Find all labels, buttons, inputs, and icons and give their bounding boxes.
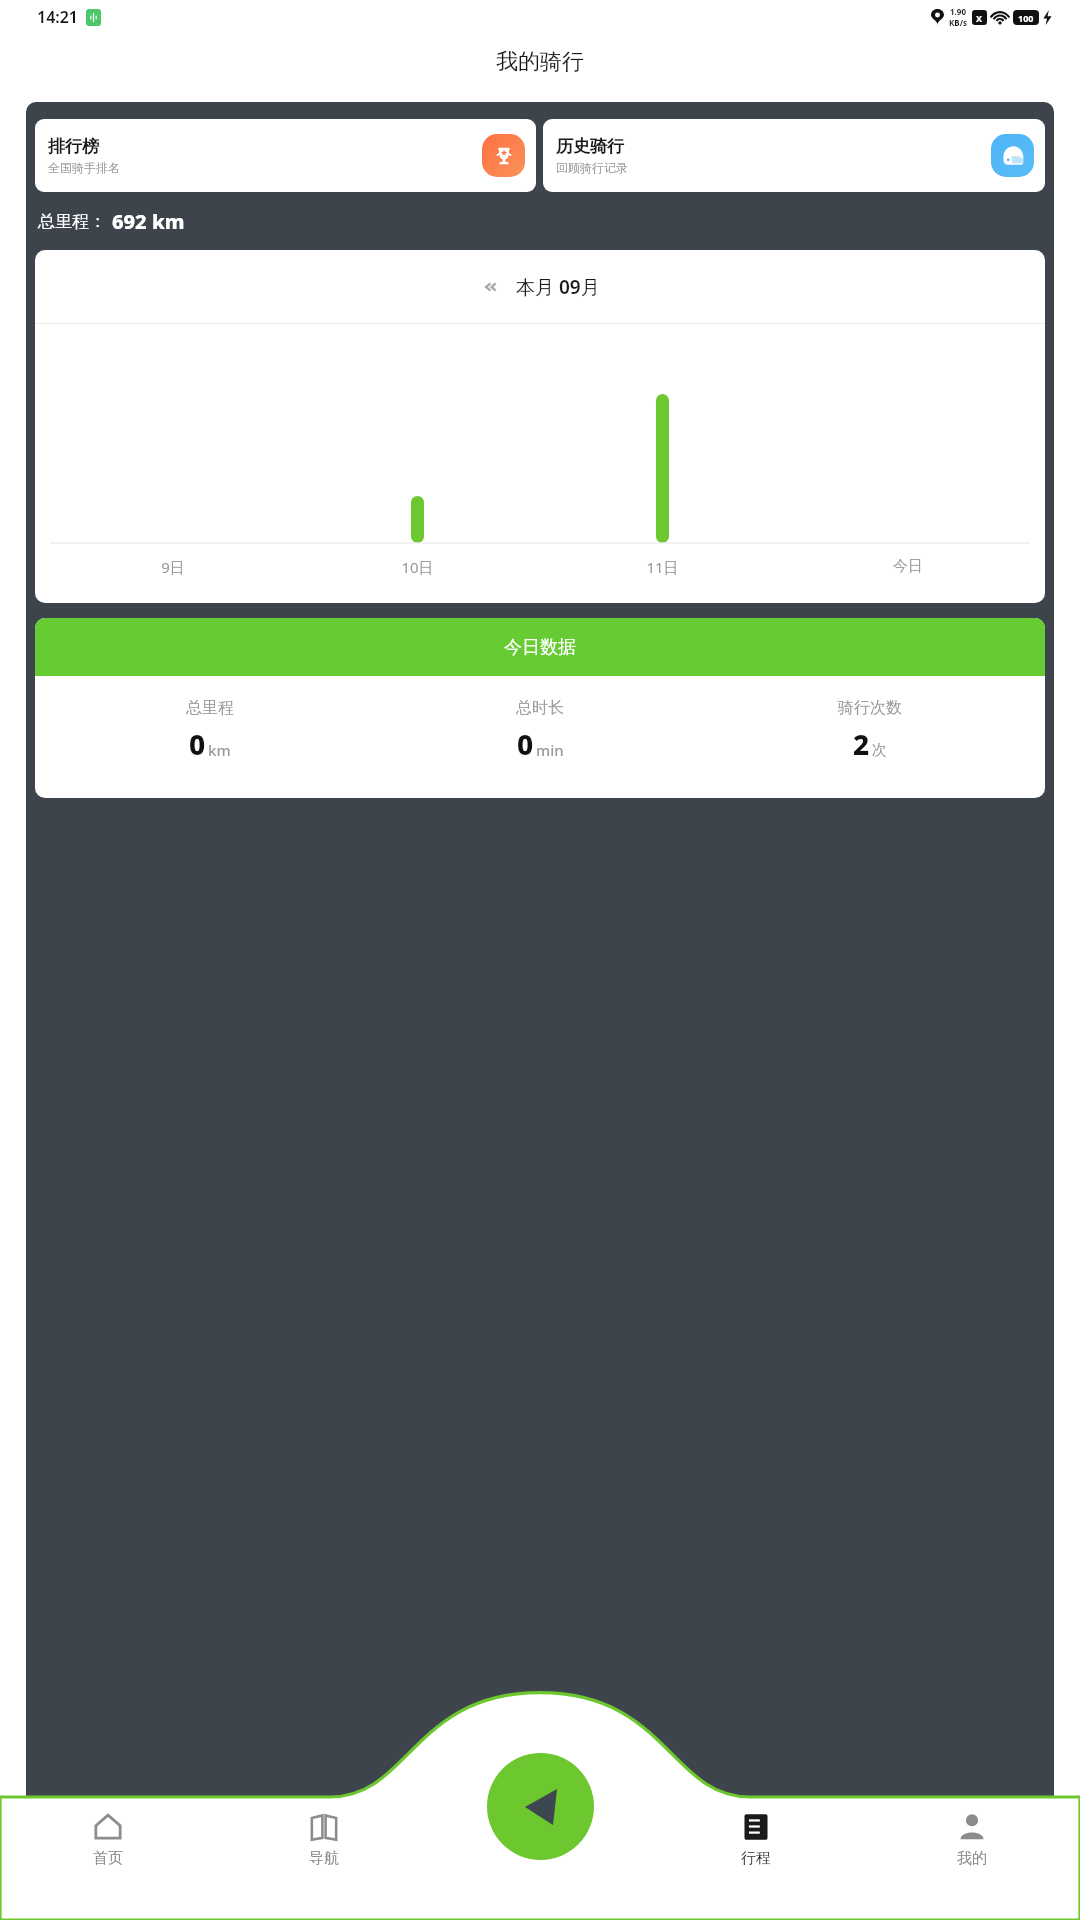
- button[interactable]: 我的: [864, 1807, 1080, 1872]
- staticText: 总里程：: [38, 211, 106, 232]
- button[interactable]: 导航: [216, 1807, 432, 1872]
- staticText: 0: [517, 725, 534, 763]
- staticText: 骑行次数: [838, 698, 902, 718]
- staticText: 首页: [93, 1849, 123, 1868]
- staticText: 导航: [309, 1849, 339, 1868]
- staticText: X: [976, 12, 983, 24]
- staticText: 11日: [646, 557, 679, 577]
- staticText: km: [208, 740, 231, 760]
- button[interactable]: 首页: [0, 1807, 216, 1872]
- staticText: 次: [872, 741, 887, 760]
- staticText: 总时长: [516, 698, 564, 718]
- staticText: 我的骑行: [496, 48, 584, 76]
- staticText: min: [536, 740, 564, 760]
- button[interactable]: 排行榜: [35, 119, 536, 192]
- staticText: 今日: [893, 557, 923, 576]
- staticText: 0: [189, 725, 206, 763]
- staticText: 全国骑手排名: [48, 160, 120, 175]
- staticText: 今日数据: [504, 636, 576, 659]
- other: Previous month: [481, 278, 499, 296]
- staticText: 行程: [741, 1849, 771, 1868]
- staticText: 排行榜: [48, 136, 99, 157]
- staticText: 本月 09月: [516, 274, 600, 300]
- button[interactable]: Start ride: [487, 1753, 594, 1860]
- staticText: 9日: [161, 557, 185, 577]
- staticText: 我的: [957, 1849, 987, 1868]
- staticText: 总里程: [186, 698, 234, 718]
- button[interactable]: Previous month: [473, 266, 608, 308]
- staticText: 历史骑行: [556, 136, 624, 157]
- staticText: 14:21: [37, 6, 79, 28]
- staticText: 2: [853, 725, 870, 763]
- staticText: KB/s: [949, 17, 967, 28]
- staticText: 10日: [401, 557, 434, 577]
- staticText: 1.90: [950, 6, 966, 17]
- button[interactable]: 行程: [648, 1807, 864, 1872]
- staticText: 692 km: [112, 208, 185, 235]
- button[interactable]: 历史骑行: [543, 119, 1045, 192]
- staticText: 100: [1018, 12, 1034, 24]
- staticText: 回顾骑行记录: [556, 160, 628, 175]
